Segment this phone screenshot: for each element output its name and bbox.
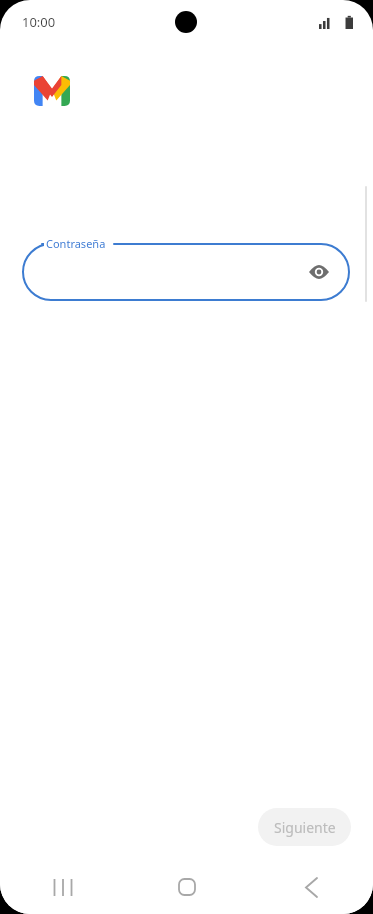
button[interactable]: Mostrar contraseña bbox=[302, 255, 336, 289]
button[interactable]: Contraseña bbox=[22, 243, 350, 301]
button[interactable]: Atrás bbox=[249, 860, 373, 914]
staticText: Siguiente bbox=[274, 818, 336, 837]
staticText: 10:00 bbox=[22, 13, 56, 31]
staticText: Contraseña bbox=[46, 236, 106, 251]
button[interactable]: Recientes bbox=[0, 860, 125, 914]
button[interactable]: Inicio bbox=[125, 860, 249, 914]
button[interactable]: Siguiente bbox=[258, 808, 351, 846]
